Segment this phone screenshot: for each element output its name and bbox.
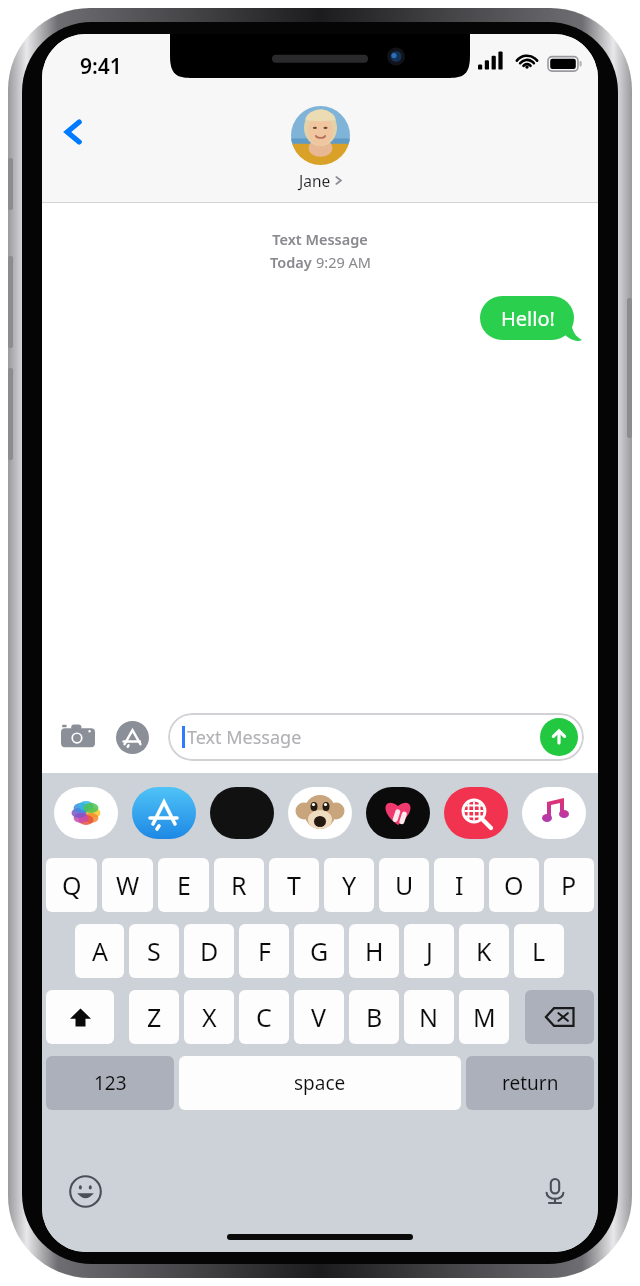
button[interactable]: return — [466, 1056, 594, 1110]
staticText: D — [200, 934, 219, 968]
staticText: J — [426, 934, 433, 968]
button[interactable]: App — [54, 787, 118, 839]
staticText: X — [202, 1000, 217, 1034]
button[interactable]: X — [184, 990, 234, 1044]
staticText: R — [231, 868, 247, 902]
staticText: Text Message — [42, 229, 598, 249]
staticText: N — [419, 1000, 439, 1034]
staticText: Y — [342, 868, 357, 902]
staticText: 9:29 AM — [316, 252, 371, 272]
staticText: return — [502, 1070, 559, 1096]
button[interactable]: App — [210, 787, 274, 839]
button[interactable]: G — [294, 924, 344, 978]
button[interactable]: C — [239, 990, 289, 1044]
button[interactable]: App — [366, 787, 430, 839]
button[interactable]: B — [349, 990, 399, 1044]
button[interactable]: Back — [52, 110, 96, 154]
button[interactable]: W — [102, 858, 153, 912]
button[interactable]: Shift — [46, 990, 114, 1044]
staticText: B — [366, 1000, 383, 1034]
button[interactable]: E — [158, 858, 209, 912]
staticText: G — [310, 934, 329, 968]
button[interactable]: Hello! — [480, 296, 582, 340]
button[interactable]: L — [514, 924, 564, 978]
staticText: space — [294, 1070, 346, 1096]
button[interactable]: Z — [129, 990, 179, 1044]
button[interactable]: P — [544, 858, 594, 912]
staticText: Today — [270, 252, 316, 272]
button[interactable]: V — [294, 990, 344, 1044]
button[interactable]: App — [522, 787, 586, 839]
button[interactable]: M — [459, 990, 509, 1044]
button[interactable]: S — [129, 924, 179, 978]
staticText: V — [311, 1000, 327, 1034]
button[interactable]: App — [444, 787, 508, 839]
button[interactable]: App Store — [110, 715, 154, 759]
button[interactable]: T — [269, 858, 319, 912]
button[interactable]: O — [489, 858, 539, 912]
button[interactable]: H — [349, 924, 399, 978]
button[interactable]: Text Message — [168, 713, 584, 761]
staticText: O — [504, 868, 524, 902]
staticText: U — [395, 868, 414, 902]
staticText: Jane — [299, 170, 331, 191]
staticText: P — [561, 868, 577, 902]
button[interactable]: Emoji — [62, 1168, 108, 1214]
staticText: L — [532, 934, 546, 968]
button[interactable]: Backspace — [525, 990, 594, 1044]
staticText: M — [473, 1000, 496, 1034]
staticText: E — [177, 868, 191, 902]
staticText: C — [256, 1000, 272, 1034]
button[interactable]: App — [288, 787, 352, 839]
staticText: W — [116, 868, 140, 902]
button[interactable]: Jane — [291, 106, 350, 191]
staticText: S — [147, 934, 161, 968]
staticText: 123 — [94, 1070, 127, 1096]
button[interactable]: App — [132, 787, 196, 839]
staticText: Text Message — [187, 725, 302, 750]
button[interactable]: Y — [324, 858, 374, 912]
button[interactable]: A — [75, 924, 124, 978]
button[interactable]: space — [179, 1056, 461, 1110]
staticText: K — [476, 934, 492, 968]
staticText: I — [455, 868, 464, 902]
staticText: A — [92, 934, 108, 968]
button[interactable]: D — [184, 924, 234, 978]
button[interactable]: R — [214, 858, 264, 912]
staticText: Hello! — [501, 305, 555, 332]
staticText: 9:41 — [80, 52, 122, 81]
button[interactable]: K — [459, 924, 509, 978]
staticText: Z — [147, 1000, 162, 1034]
button[interactable]: N — [404, 990, 454, 1044]
button[interactable]: Dictation — [532, 1168, 578, 1214]
button[interactable]: Q — [46, 858, 97, 912]
button[interactable]: J — [404, 924, 454, 978]
staticText: H — [365, 934, 384, 968]
button[interactable]: 123 — [46, 1056, 174, 1110]
staticText: F — [258, 934, 271, 968]
button[interactable]: I — [434, 858, 484, 912]
button[interactable]: U — [379, 858, 429, 912]
staticText: Q — [62, 868, 82, 902]
button[interactable]: Send — [540, 718, 578, 756]
button[interactable]: F — [239, 924, 289, 978]
staticText: T — [287, 868, 301, 902]
button[interactable]: Camera — [56, 715, 100, 759]
